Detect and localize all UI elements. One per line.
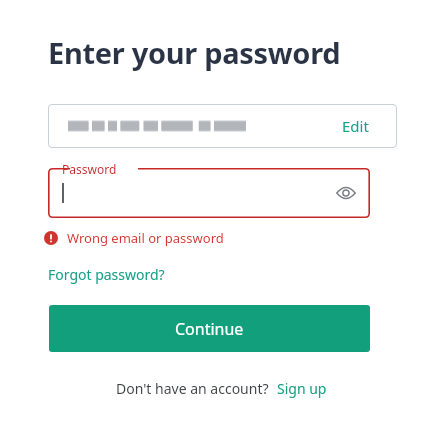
button[interactable]: Edit	[328, 108, 383, 144]
staticText: Wrong email or password	[67, 229, 224, 247]
button[interactable]: Forgot password?	[43, 261, 170, 288]
staticText: Continue	[175, 318, 244, 340]
staticText: Forgot password?	[48, 265, 165, 284]
staticText: Edit	[342, 116, 369, 136]
button[interactable]: Show password	[331, 178, 361, 208]
staticText: Sign up	[277, 379, 327, 398]
staticText: Enter your password	[48, 33, 341, 72]
staticText: Don't have an account?	[116, 379, 269, 398]
button[interactable]: Edit	[48, 104, 397, 148]
button[interactable]: Continue	[49, 305, 370, 352]
staticText: Password	[62, 161, 117, 177]
button[interactable]: Sign up	[275, 376, 329, 401]
